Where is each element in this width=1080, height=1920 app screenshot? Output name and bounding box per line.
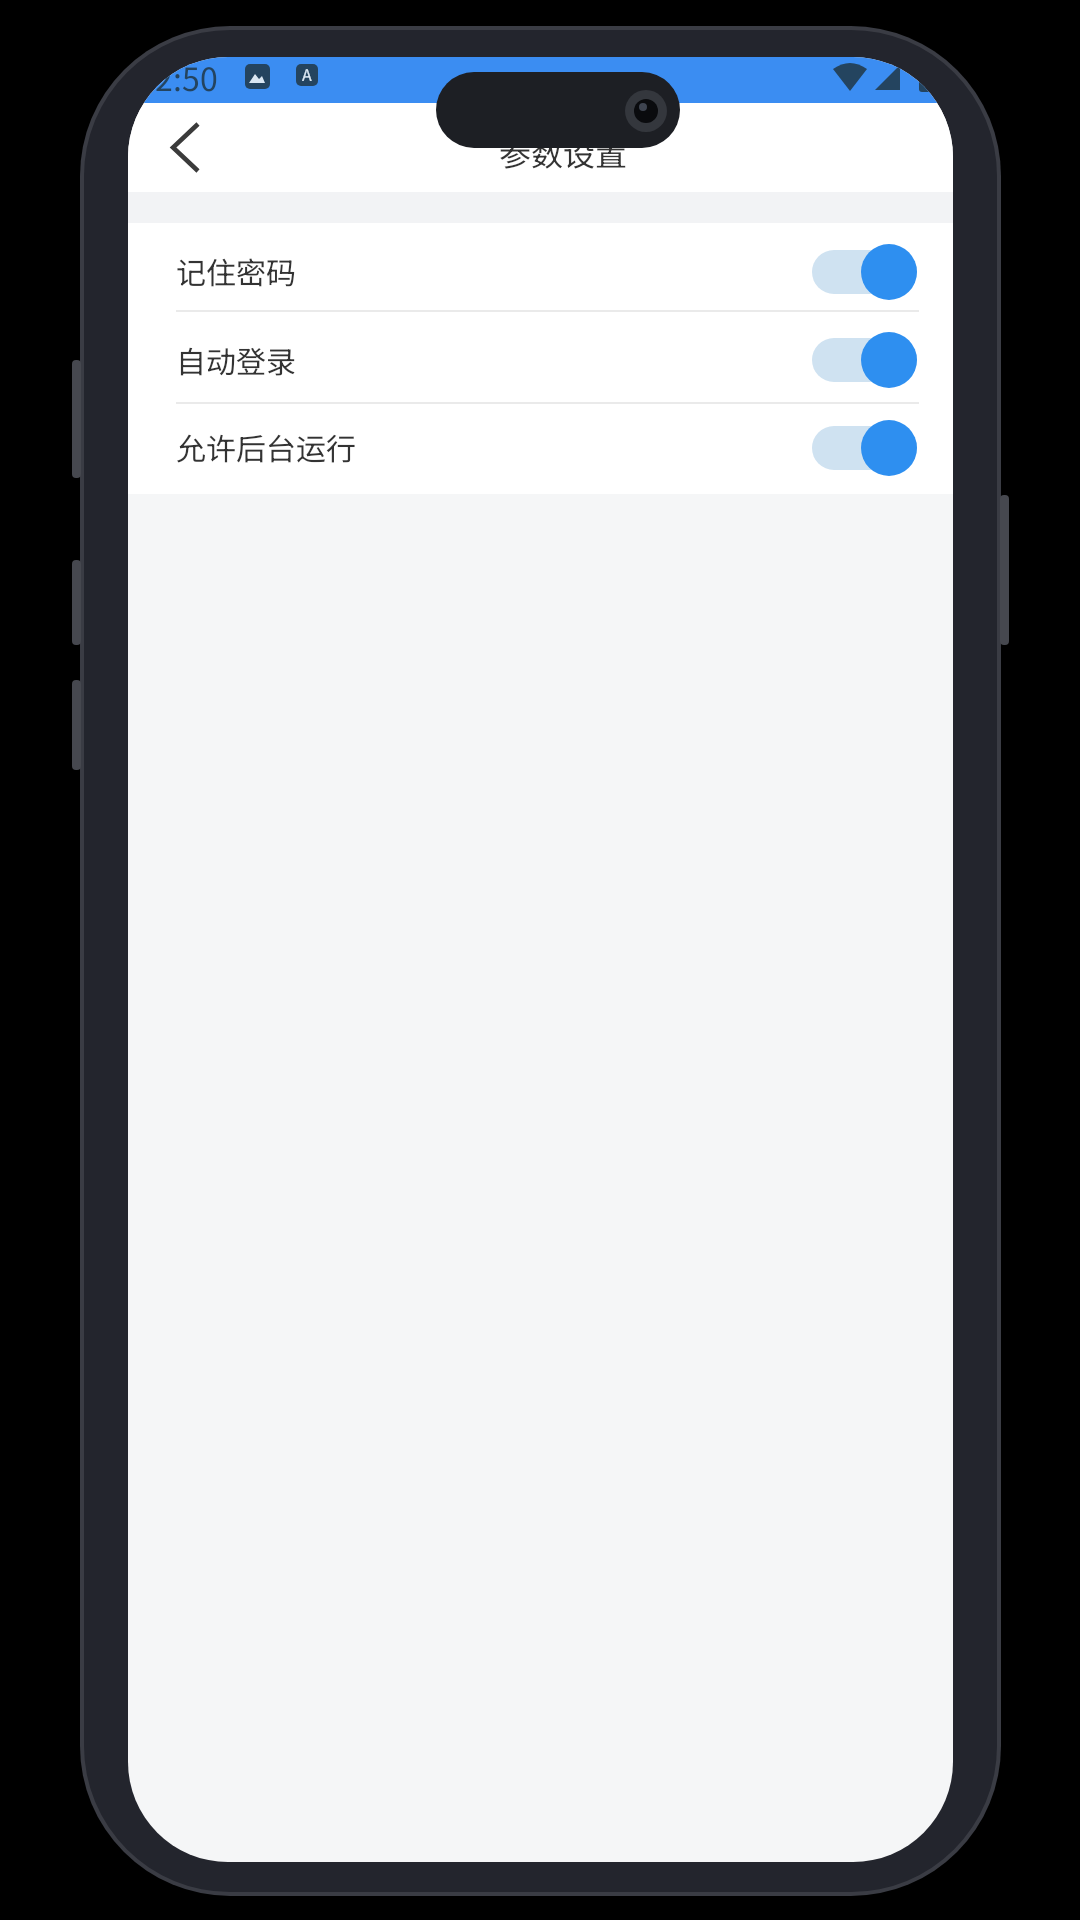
button[interactable] <box>158 115 212 179</box>
button[interactable] <box>128 404 953 494</box>
button[interactable] <box>812 426 917 470</box>
button[interactable] <box>812 250 917 294</box>
button[interactable] <box>128 223 953 311</box>
button[interactable] <box>812 338 917 382</box>
button[interactable] <box>128 312 953 403</box>
